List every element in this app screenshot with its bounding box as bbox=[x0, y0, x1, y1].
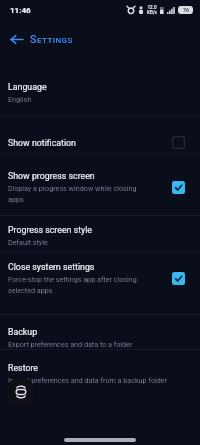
staticText: English bbox=[8, 95, 32, 103]
staticText: Restore bbox=[8, 363, 38, 373]
button[interactable]: Restore bbox=[0, 350, 200, 393]
button[interactable]: Floating assistant button bbox=[6, 377, 35, 406]
staticText: Language bbox=[8, 82, 47, 92]
staticText: Force-stop the settings app after closin… bbox=[8, 275, 154, 295]
button[interactable]: Show notification bbox=[0, 116, 200, 153]
staticText: Show progress screen bbox=[8, 171, 95, 181]
staticText: Backup bbox=[8, 327, 38, 337]
staticText: Close system settings bbox=[8, 262, 95, 272]
button[interactable]: Show progress screen bbox=[0, 154, 200, 215]
staticText: Export preferences and data to a folder bbox=[8, 340, 133, 348]
staticText: 11:46 bbox=[10, 6, 31, 15]
button[interactable]: Progress screen style bbox=[0, 216, 200, 252]
button[interactable]: Language bbox=[0, 78, 200, 115]
staticText: Show notification bbox=[8, 138, 76, 148]
staticText: Default style bbox=[8, 238, 48, 246]
button[interactable]: Backup bbox=[0, 315, 200, 349]
staticText: ETTINGS bbox=[37, 36, 73, 45]
staticText: Display a progress window while closing … bbox=[8, 184, 154, 204]
staticText: Progress screen style bbox=[8, 225, 93, 235]
staticText: S bbox=[30, 33, 37, 45]
button[interactable]: Close system settings bbox=[0, 253, 200, 314]
staticText: 12.0 KB/s bbox=[147, 5, 157, 15]
staticText: 76 bbox=[183, 7, 189, 13]
staticText: Import preferences and data from a backu… bbox=[8, 376, 168, 384]
button[interactable]: Back bbox=[3, 26, 29, 52]
